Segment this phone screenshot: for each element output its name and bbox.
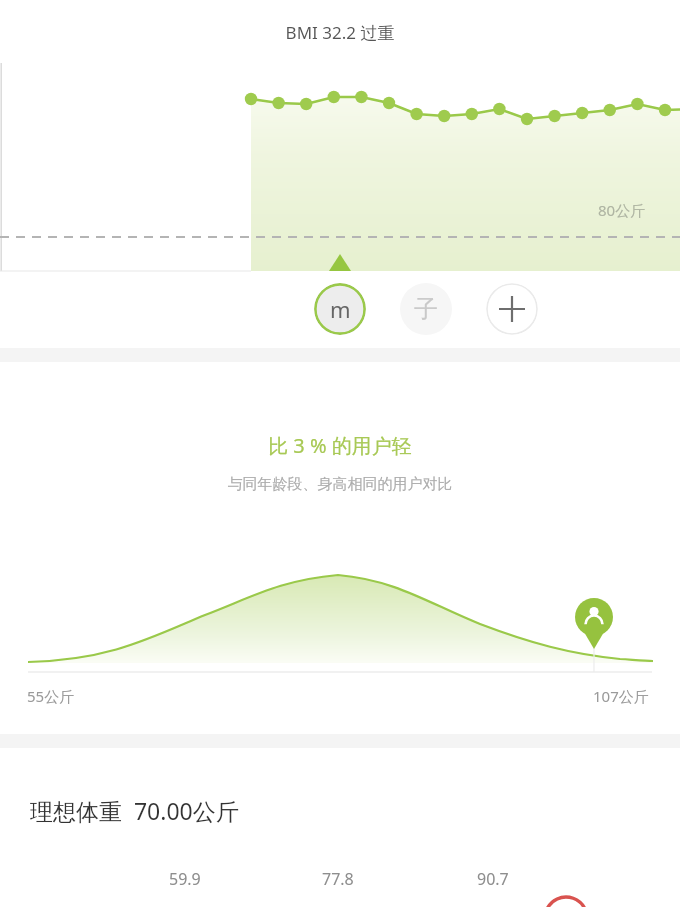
staticText: 比 3 % 的用户轻 [0,432,680,459]
staticText: 90.7 [477,868,509,890]
button[interactable]: Add profile [486,283,538,335]
staticText: 子 [414,294,438,324]
button[interactable]: Profile m [314,283,366,335]
staticText: 与同年龄段、身高相同的用户对比 [0,475,680,494]
staticText: m [330,294,351,324]
button[interactable]: Profile 子 [400,283,452,335]
staticText: 107公斤 [593,686,649,706]
staticText: 理想体重 70.00公斤 [30,795,239,826]
staticText: 77.8 [322,868,354,890]
staticText: BMI 32.2 过重 [0,21,680,44]
staticText: 80公斤 [598,200,646,220]
staticText: 59.9 [169,868,201,890]
staticText: 55公斤 [27,686,75,706]
